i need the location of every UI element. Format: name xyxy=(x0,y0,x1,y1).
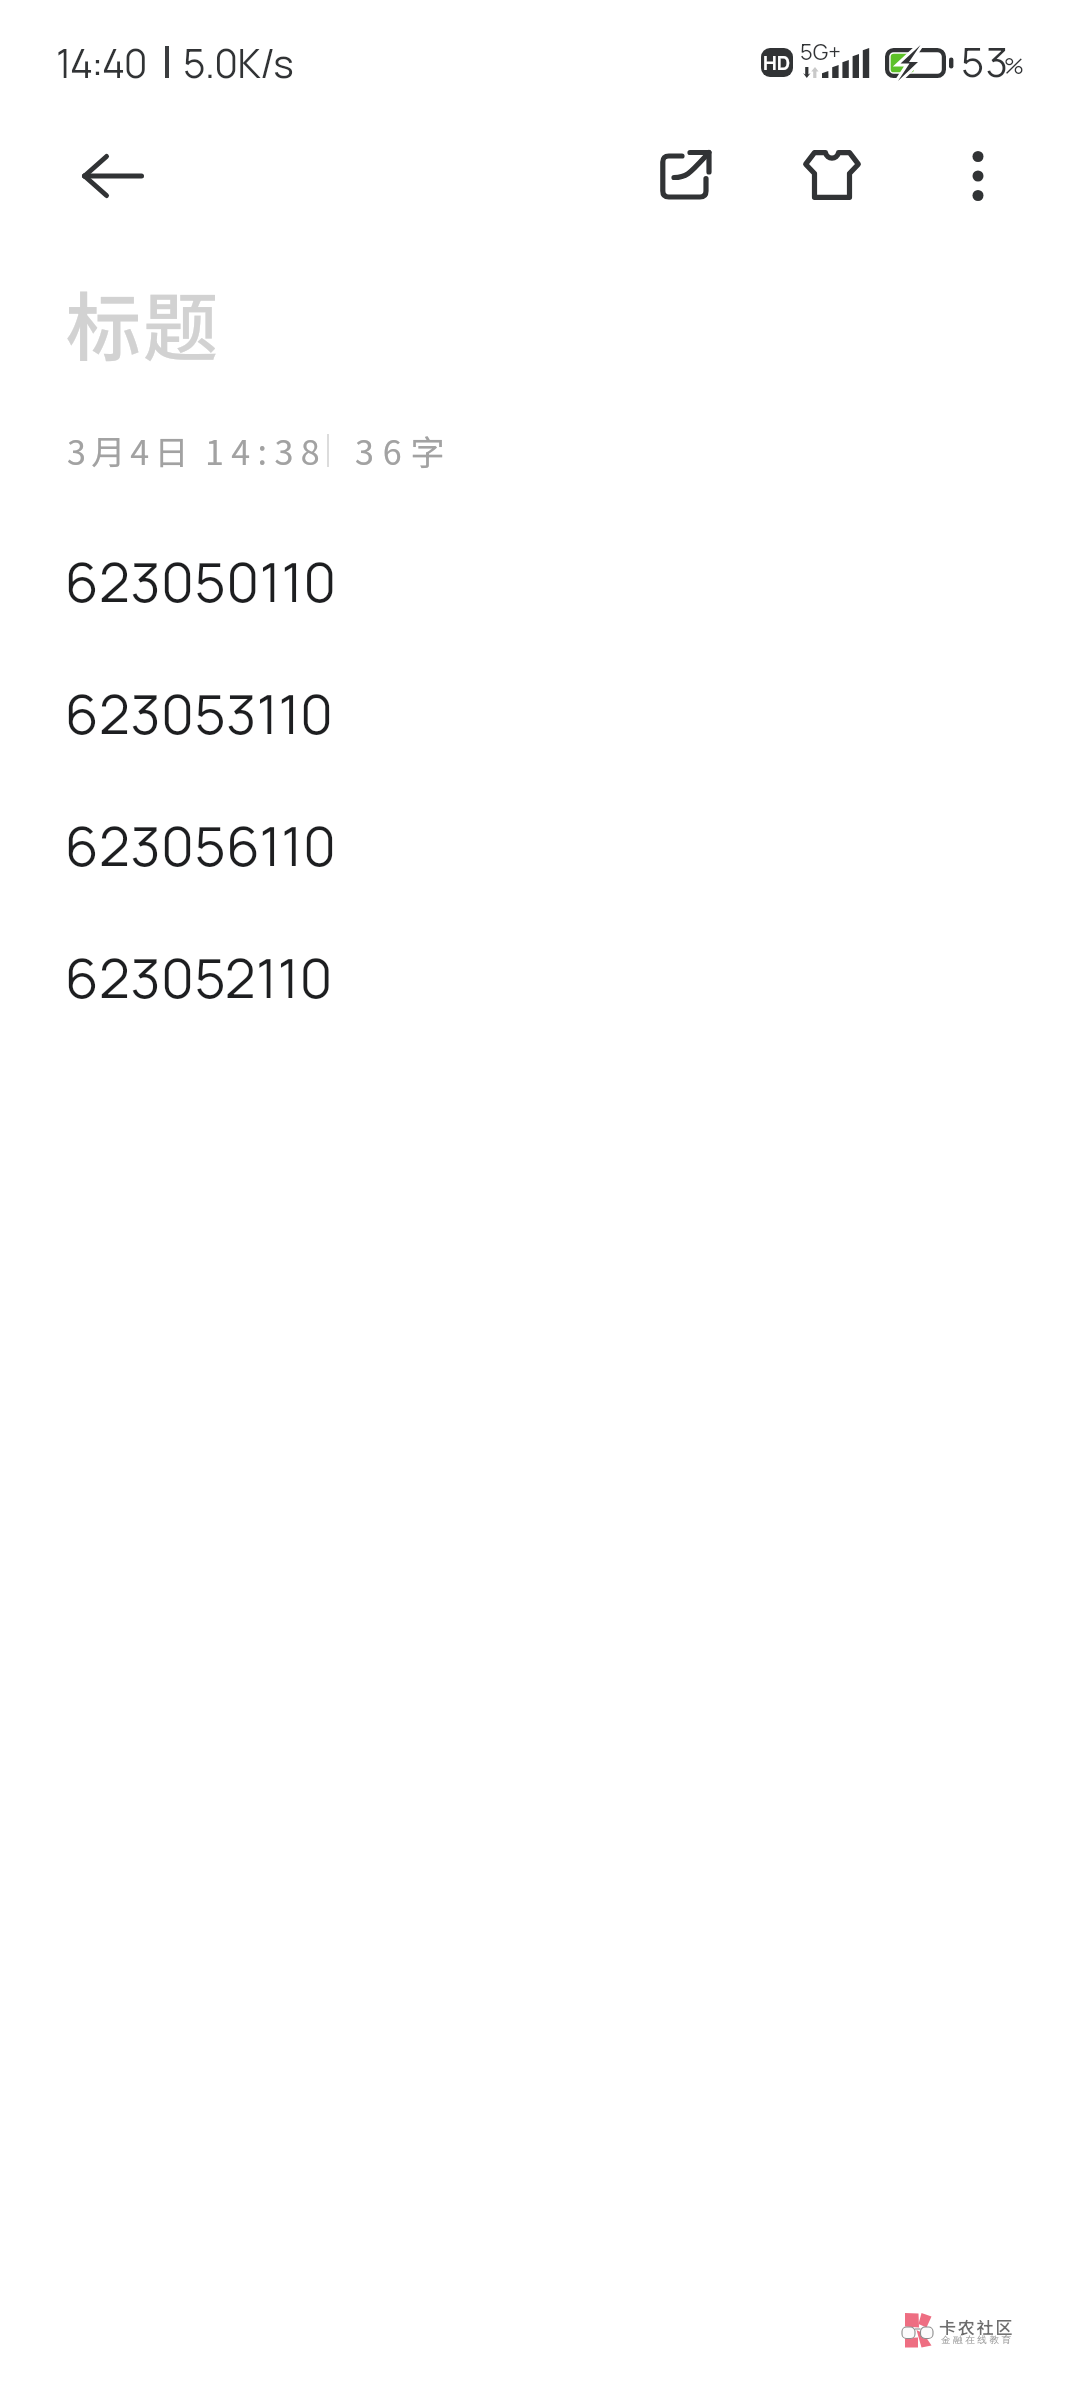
staticText: 金融在线教育 xyxy=(941,2334,1014,2346)
staticText: 5G+ xyxy=(800,37,841,67)
staticText: 3月4日 xyxy=(67,426,194,475)
staticText: 623056110 xyxy=(65,808,337,882)
staticText: 623052110 xyxy=(65,940,333,1014)
staticText: 623050110 xyxy=(65,544,337,618)
staticText: 36字 xyxy=(355,426,454,475)
staticText: % xyxy=(1004,51,1024,81)
button[interactable]: Theme xyxy=(782,125,882,225)
button[interactable]: Share xyxy=(636,127,736,227)
staticText: HD xyxy=(763,50,791,76)
staticText: 623053110 xyxy=(65,676,334,750)
staticText: 5.0K/s xyxy=(183,36,294,89)
button[interactable]: More options xyxy=(928,126,1028,226)
staticText: 14:38 xyxy=(205,426,327,475)
button[interactable]: Back xyxy=(63,126,163,226)
staticText: 卡农社区 xyxy=(939,2314,1015,2339)
staticText: 标题 xyxy=(66,268,221,377)
staticText: 14:40 xyxy=(56,36,147,89)
staticText: 53 xyxy=(961,34,1010,89)
